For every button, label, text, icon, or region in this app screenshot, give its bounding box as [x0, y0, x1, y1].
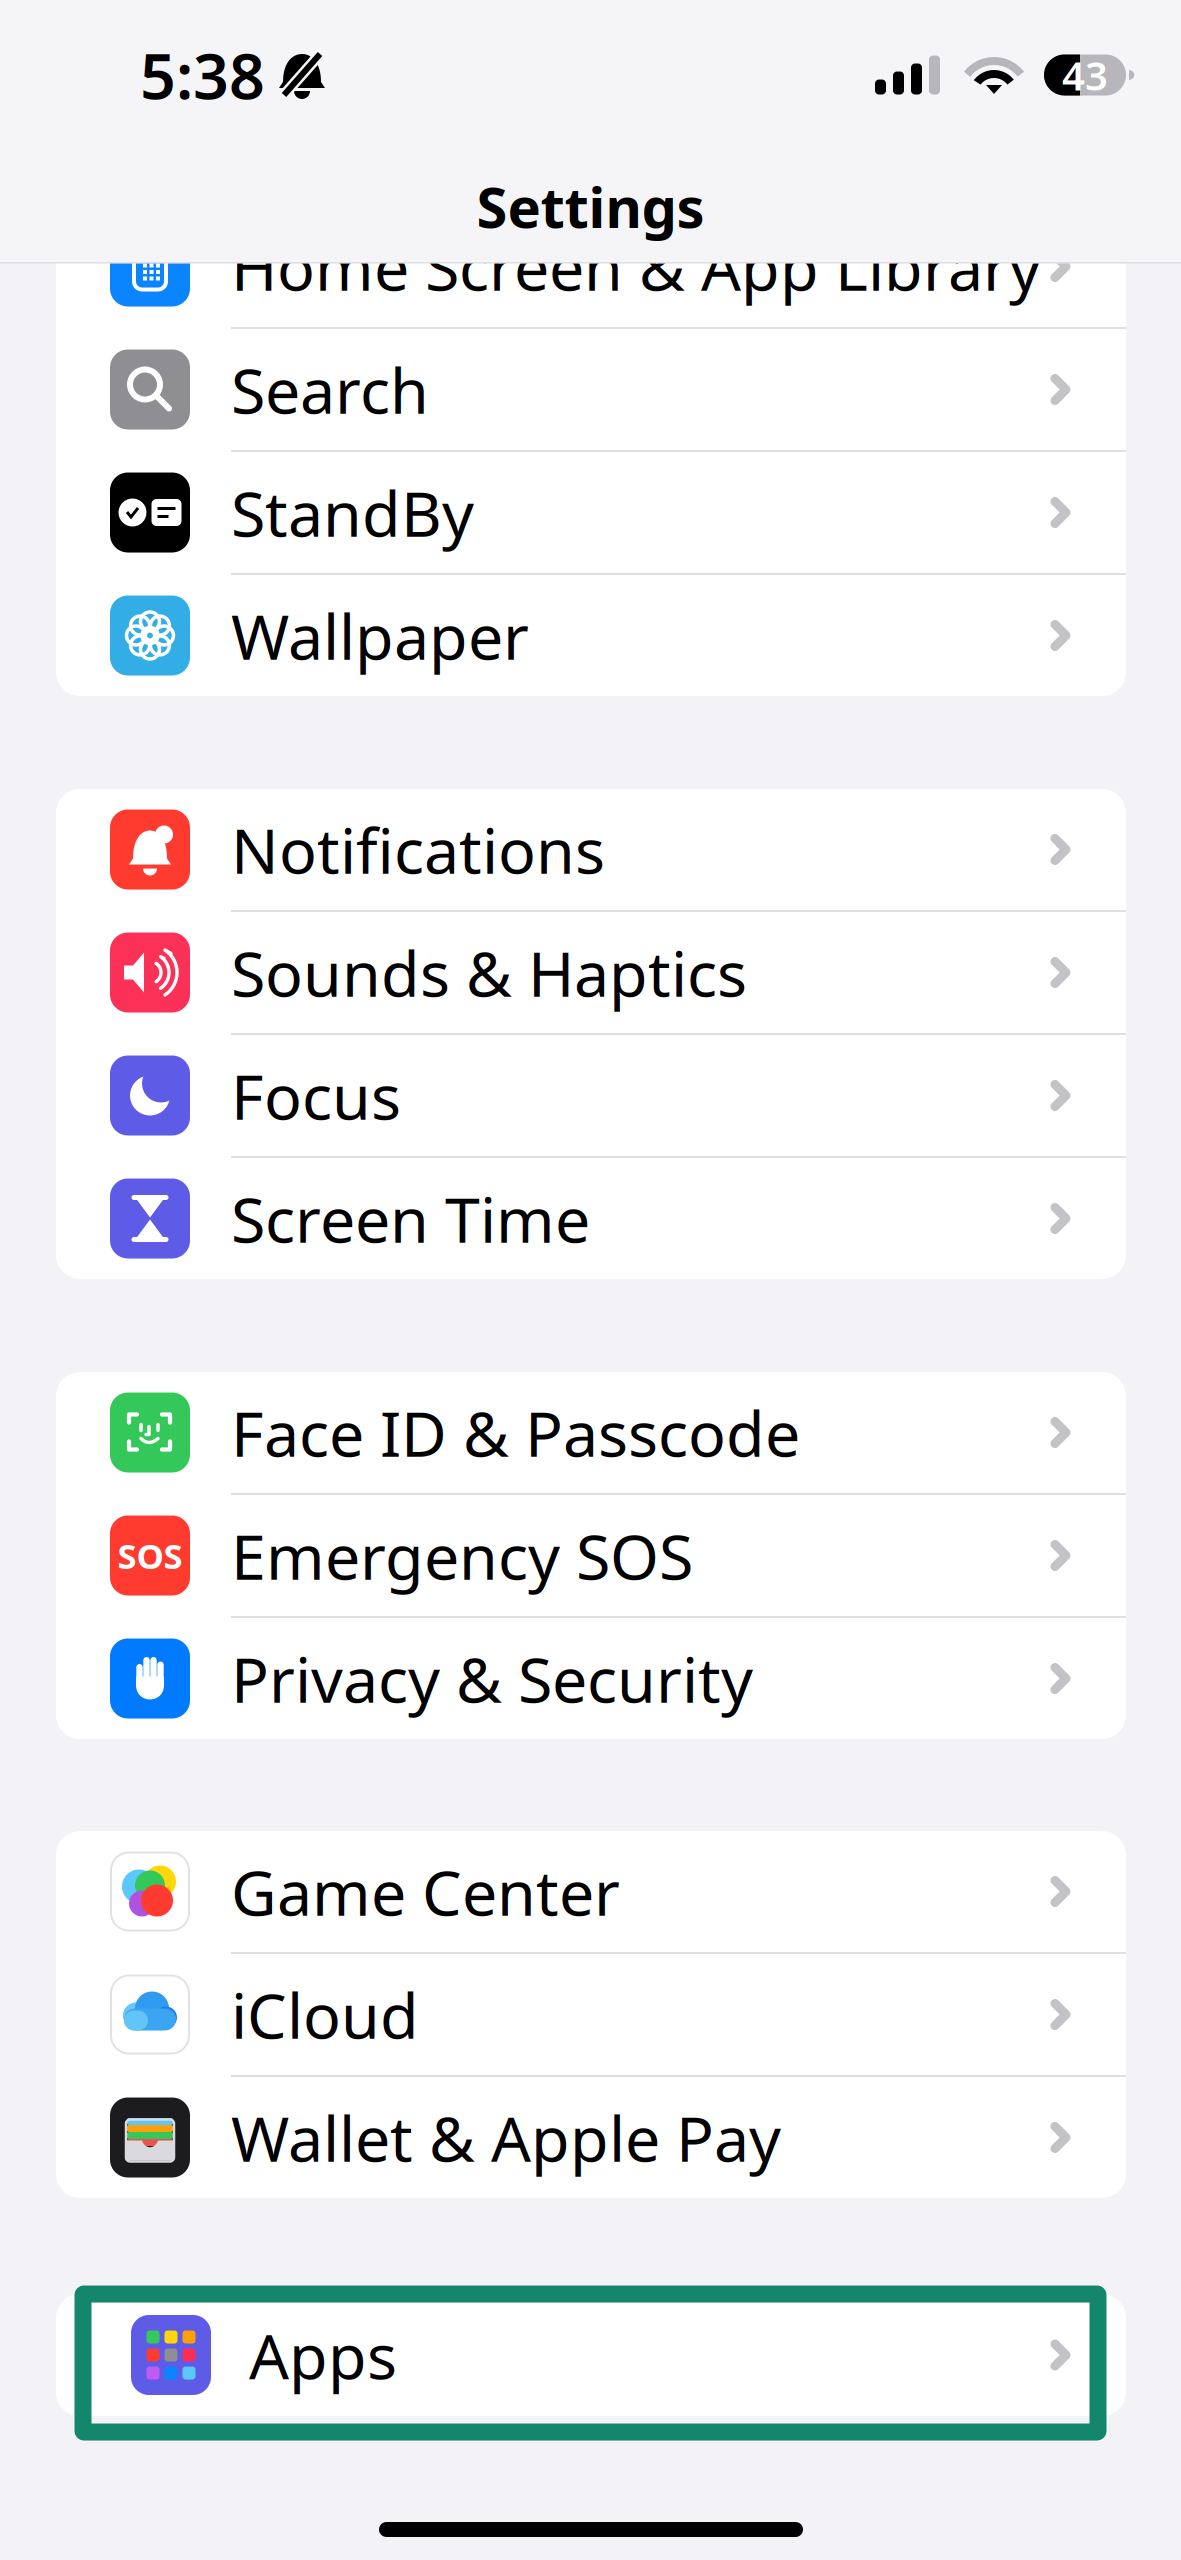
- staticText: Sounds & Haptics: [231, 931, 747, 1014]
- button[interactable]: Notifications: [56, 789, 1126, 910]
- button[interactable]: Privacy & Security: [56, 1618, 1126, 1739]
- button[interactable]: Screen Time: [56, 1158, 1126, 1279]
- staticText: Search: [231, 348, 429, 431]
- staticText: SOS: [117, 1532, 182, 1578]
- staticText: Game Center: [231, 1850, 620, 1933]
- button[interactable]: SOS: [56, 1495, 1126, 1616]
- button[interactable]: Apps: [56, 2294, 1126, 2416]
- button[interactable]: Search: [56, 329, 1126, 450]
- button[interactable]: Focus: [56, 1035, 1126, 1156]
- button[interactable]: iCloud: [56, 1954, 1126, 2075]
- staticText: Focus: [231, 1054, 401, 1137]
- button[interactable]: StandBy: [56, 452, 1126, 573]
- staticText: 43: [1062, 48, 1108, 101]
- button[interactable]: Wallet & Apple Pay: [56, 2077, 1126, 2198]
- button[interactable]: Home Screen & App Library: [56, 206, 1126, 327]
- staticText: Apps: [249, 2313, 397, 2397]
- staticText: StandBy: [231, 471, 474, 554]
- staticText: Home Screen & App Library: [231, 225, 1041, 308]
- staticText: 5:38: [140, 33, 265, 117]
- staticText: Face ID & Passcode: [231, 1391, 800, 1474]
- staticText: Wallpaper: [231, 594, 529, 677]
- button[interactable]: Wallpaper: [56, 575, 1126, 696]
- staticText: Emergency SOS: [231, 1514, 693, 1597]
- staticText: Screen Time: [231, 1177, 590, 1260]
- staticText: Wallet & Apple Pay: [231, 2096, 781, 2179]
- button[interactable]: Face ID & Passcode: [56, 1372, 1126, 1493]
- staticText: Notifications: [231, 808, 605, 891]
- staticText: iCloud: [231, 1973, 419, 2056]
- button[interactable]: Sounds & Haptics: [56, 912, 1126, 1033]
- staticText: Settings: [476, 169, 704, 243]
- button[interactable]: Game Center: [56, 1831, 1126, 1952]
- staticText: Privacy & Security: [231, 1637, 753, 1720]
